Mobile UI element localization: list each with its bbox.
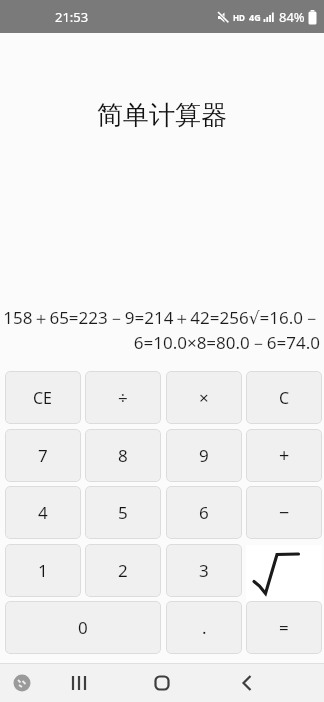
button[interactable]: + (246, 429, 322, 482)
button[interactable]: × (166, 371, 242, 424)
staticText: 158＋65=223－9=214＋42=256√=16.0－ 6=10.0×8=… (0, 306, 320, 354)
staticText: C (279, 387, 290, 409)
staticText: 4G (249, 11, 261, 23)
staticText: 21:53 (55, 8, 89, 26)
staticText: 8 (118, 444, 128, 467)
button[interactable]: 4 (5, 486, 81, 539)
button[interactable]: 5 (85, 486, 161, 539)
staticText: 5 (118, 501, 128, 524)
button[interactable] (65, 669, 93, 697)
button[interactable] (148, 669, 176, 697)
staticText: 3 (199, 559, 209, 582)
staticText: = (279, 616, 289, 639)
button[interactable]: − (246, 486, 322, 539)
staticText: . (202, 616, 207, 639)
button[interactable]: 7 (5, 429, 81, 482)
button[interactable]: 8 (85, 429, 161, 482)
button[interactable]: 0 (5, 601, 161, 654)
button[interactable]: = (246, 601, 322, 654)
button[interactable]: C (246, 371, 322, 424)
button[interactable]: 9 (166, 429, 242, 482)
staticText: 简单计算器 (97, 99, 227, 132)
button[interactable] (246, 545, 322, 601)
staticText: 7 (38, 444, 48, 467)
button[interactable]: CE (5, 371, 81, 424)
button[interactable]: 6 (166, 486, 242, 539)
staticText: HD (233, 12, 245, 23)
button[interactable]: 3 (166, 544, 242, 597)
button[interactable]: 1 (5, 544, 81, 597)
staticText: 4 (38, 501, 48, 524)
button[interactable]: 2 (85, 544, 161, 597)
button[interactable]: ÷ (85, 371, 161, 424)
staticText: 84% (279, 8, 305, 26)
staticText: ÷ (118, 386, 128, 409)
staticText: 1 (38, 559, 48, 582)
staticText: 9 (199, 444, 209, 467)
button[interactable]: . (166, 601, 242, 654)
staticText: × (199, 386, 209, 409)
staticText: + (279, 443, 290, 468)
staticText: 0 (78, 616, 88, 639)
staticText: CE (33, 387, 53, 409)
staticText: − (279, 500, 290, 525)
button[interactable] (12, 673, 32, 693)
button[interactable] (233, 669, 261, 697)
staticText: 2 (118, 559, 128, 582)
staticText: 6 (199, 501, 209, 524)
